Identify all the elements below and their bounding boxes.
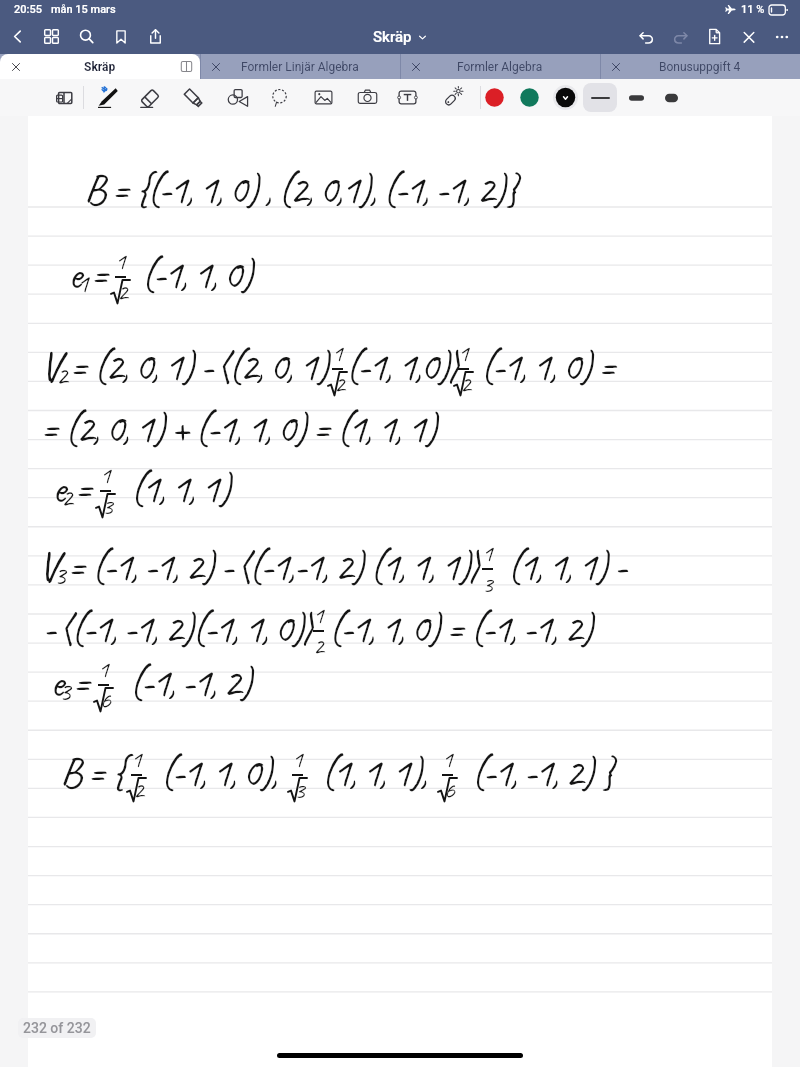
staticText: 2 bbox=[117, 277, 128, 307]
staticText: 1 bbox=[313, 600, 324, 630]
staticText: 1 bbox=[115, 246, 126, 276]
button[interactable]: Bookmark bbox=[104, 19, 138, 54]
button[interactable]: Eraser bbox=[129, 79, 171, 116]
staticText: (1, 1, 1) - bbox=[499, 540, 625, 593]
staticText: (-1, 1,0)⟩ bbox=[345, 340, 454, 393]
staticText: 6 bbox=[444, 775, 455, 805]
button[interactable]: Thumbnails bbox=[34, 19, 68, 54]
button[interactable]: Close tab bbox=[0, 54, 32, 79]
staticText: 1 bbox=[131, 744, 142, 774]
staticText: 2 bbox=[56, 359, 66, 392]
staticText: 2 bbox=[313, 631, 324, 661]
staticText: 2 bbox=[61, 481, 71, 514]
staticText: Bonusuppgift 4 bbox=[659, 60, 741, 74]
button[interactable]: Highlighter bbox=[172, 79, 214, 116]
staticText: 1 bbox=[292, 744, 303, 774]
staticText: = bbox=[90, 248, 107, 301]
staticText: e bbox=[52, 462, 64, 515]
staticText: (-1, 1, 0) = bbox=[472, 340, 614, 393]
button[interactable]: Close tab bbox=[200, 54, 232, 79]
button[interactable]: Magic wand bbox=[431, 79, 473, 116]
button[interactable]: New page bbox=[697, 19, 731, 54]
button[interactable]: Close tab bbox=[200, 54, 400, 79]
staticText: 3 bbox=[102, 491, 113, 521]
staticText: B = {(-1, 1, 0) , (2, 0,1), (-1, -1, 2)} bbox=[84, 163, 515, 216]
staticText: (-1, 1, 0), bbox=[152, 746, 284, 799]
button[interactable]: Shapes bbox=[216, 79, 258, 116]
staticText: 11 % bbox=[741, 3, 765, 16]
staticText: e bbox=[68, 248, 80, 301]
button[interactable]: Close bbox=[732, 19, 766, 54]
staticText: 3 bbox=[54, 559, 64, 592]
staticText: Formler Algebra bbox=[457, 60, 543, 74]
staticText: Skräp bbox=[84, 60, 116, 74]
staticText: 20:55 bbox=[14, 3, 42, 16]
button[interactable]: More bbox=[765, 19, 799, 54]
staticText: 1 bbox=[100, 460, 111, 490]
staticText: mån 15 mars bbox=[51, 3, 116, 16]
button[interactable]: Stroke width bbox=[619, 83, 653, 112]
staticText: 1 bbox=[442, 744, 453, 774]
button[interactable]: Back bbox=[0, 19, 34, 54]
button[interactable]: Share bbox=[138, 19, 172, 54]
staticText: 232 of 232 bbox=[23, 1020, 91, 1036]
button[interactable]: Close tab bbox=[600, 54, 632, 79]
staticText: = bbox=[74, 462, 91, 515]
staticText: (-1, 1, 0) bbox=[133, 248, 251, 301]
button[interactable]: Pen bbox=[85, 79, 127, 116]
button[interactable]: Image bbox=[302, 79, 344, 116]
staticText: 3 bbox=[294, 775, 305, 805]
button[interactable]: Stroke width bbox=[583, 83, 617, 112]
staticText: V bbox=[40, 340, 59, 393]
staticText: e bbox=[50, 656, 62, 709]
staticText: 3 bbox=[482, 569, 493, 599]
button[interactable]: Page settings bbox=[44, 79, 86, 116]
button[interactable]: Camera bbox=[346, 79, 388, 116]
staticText: = bbox=[72, 656, 89, 709]
staticText: Formler Linjär Algebra bbox=[241, 60, 359, 74]
staticText: 2 bbox=[334, 369, 345, 399]
staticText: (-1, 1, 0) = (-1, -1, 2) bbox=[328, 602, 591, 655]
staticText: 6 bbox=[100, 685, 111, 715]
button[interactable]: Close tab bbox=[400, 54, 600, 79]
staticText: (1, 1, 1), bbox=[313, 746, 434, 799]
staticText: (1, 1, 1) bbox=[122, 462, 229, 515]
staticText: 1 bbox=[77, 267, 87, 300]
button[interactable]: Lasso bbox=[258, 79, 300, 116]
staticText: 1 bbox=[482, 538, 493, 568]
button[interactable]: Close tab bbox=[600, 54, 800, 79]
button[interactable]: Colour bbox=[548, 79, 582, 116]
staticText: Skräp bbox=[373, 28, 412, 46]
button[interactable]: Split view bbox=[172, 54, 200, 79]
staticText: (-1, -1, 2) bbox=[121, 656, 250, 709]
button[interactable]: Search bbox=[69, 19, 103, 54]
staticText: 1 bbox=[98, 654, 109, 684]
button[interactable]: Colour bbox=[477, 79, 511, 116]
button[interactable]: Close tab bbox=[400, 54, 432, 79]
staticText: = (-1, -1, 2) - ⟨(-1,-1, 2) (1, 1, 1)⟩ bbox=[67, 540, 475, 593]
button[interactable]: Colour bbox=[512, 79, 546, 116]
staticText: V bbox=[38, 540, 57, 593]
button[interactable]: Redo bbox=[663, 19, 697, 54]
staticText: 1 bbox=[458, 338, 469, 368]
staticText: 2 bbox=[460, 369, 471, 399]
staticText: 3 bbox=[59, 675, 69, 708]
button[interactable]: Undo bbox=[629, 19, 663, 54]
staticText: 2 bbox=[133, 775, 144, 805]
staticText: = (2, 0, 1) + (-1, 1, 0) = (1, 1, 1) bbox=[40, 402, 435, 455]
button[interactable]: Text bbox=[386, 79, 428, 116]
staticText: (-1, -1, 2) } bbox=[463, 746, 611, 799]
staticText: = (2, 0, 1) - ⟨(2, 0, 1) bbox=[69, 340, 327, 393]
button[interactable]: Close tab bbox=[0, 54, 200, 79]
staticText: - ⟨(-1, -1, 2)(-1, 1, 0)⟩ bbox=[42, 602, 308, 655]
button[interactable]: Stroke width bbox=[654, 83, 688, 112]
staticText: B = { bbox=[60, 746, 123, 799]
staticText: 1 bbox=[332, 338, 343, 368]
